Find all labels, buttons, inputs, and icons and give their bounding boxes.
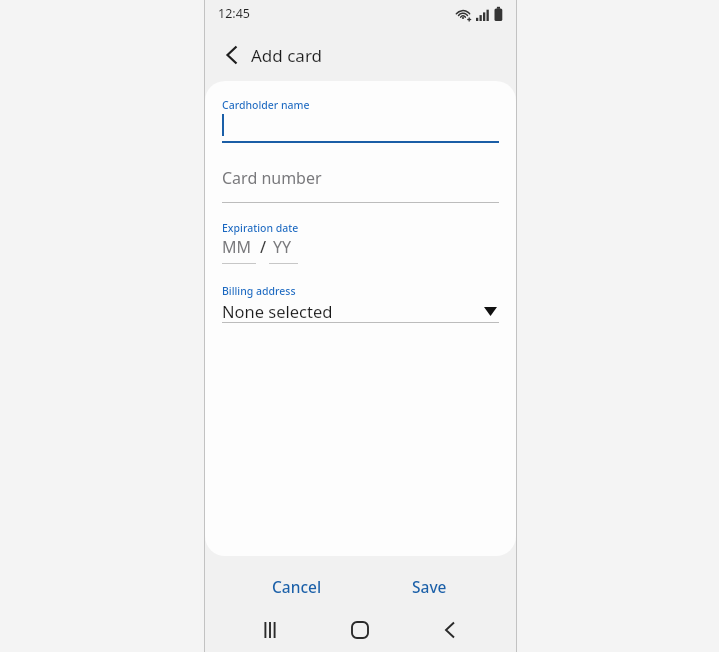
staticText: Billing address xyxy=(222,284,296,298)
staticText: Cancel xyxy=(272,576,322,597)
staticText: None selected xyxy=(222,300,333,322)
staticText: MM xyxy=(222,236,252,258)
button[interactable]: Recent apps xyxy=(254,614,286,646)
button[interactable]: Navigate up xyxy=(215,38,249,72)
staticText: Card number xyxy=(222,167,322,189)
staticText: Expiration date xyxy=(222,221,299,235)
button[interactable]: Home xyxy=(344,614,376,646)
staticText: / xyxy=(260,236,267,258)
button[interactable]: None selected xyxy=(222,296,499,324)
button[interactable]: Back xyxy=(434,614,466,646)
staticText: Cardholder name xyxy=(222,98,310,112)
staticText: Save xyxy=(412,576,447,597)
staticText: Add card xyxy=(251,44,323,67)
staticText: 12:45 xyxy=(218,5,250,22)
button[interactable]: Cancel xyxy=(261,569,333,603)
staticText: YY xyxy=(273,236,292,258)
button[interactable]: Save xyxy=(400,569,458,603)
